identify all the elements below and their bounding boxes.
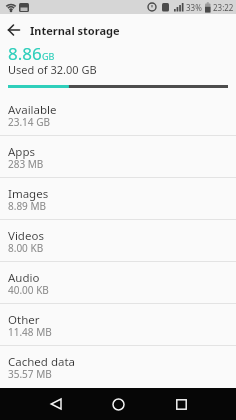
staticText: 283 MB [8, 157, 44, 171]
staticText: 11.48 MB [8, 325, 52, 339]
staticText: Internal storage [30, 23, 120, 38]
staticText: Audio [8, 270, 40, 286]
staticText: Used of 32.00 GB [8, 62, 97, 77]
button[interactable]: Internal storage [0, 14, 236, 46]
staticText: Cached data [8, 354, 76, 370]
staticText: Images [8, 186, 49, 202]
staticText: 40.00 KB [8, 283, 49, 297]
button[interactable]: Other [0, 304, 236, 346]
button[interactable]: Images [0, 178, 236, 220]
staticText: 8.00 KB [8, 241, 44, 255]
button[interactable] [87, 388, 150, 420]
button[interactable] [24, 388, 87, 420]
staticText: 33% [186, 2, 202, 13]
staticText: 8.86 [8, 42, 42, 65]
button[interactable]: Videos [0, 220, 236, 262]
staticText: 8.89 MB [8, 199, 47, 213]
button[interactable]: Cached data [0, 346, 236, 388]
button[interactable]: Apps [0, 136, 236, 178]
staticText: 23:22 [213, 2, 234, 13]
button[interactable]: Available [0, 94, 236, 136]
staticText: Videos [8, 228, 44, 244]
staticText: Apps [8, 144, 36, 160]
button[interactable] [150, 388, 213, 420]
staticText: 23.14 GB [8, 115, 50, 129]
staticText: Other [8, 312, 40, 328]
staticText: Available [8, 102, 57, 118]
staticText: GB [42, 50, 55, 62]
button[interactable]: Audio [0, 262, 236, 304]
staticText: 35.57 MB [8, 367, 52, 381]
